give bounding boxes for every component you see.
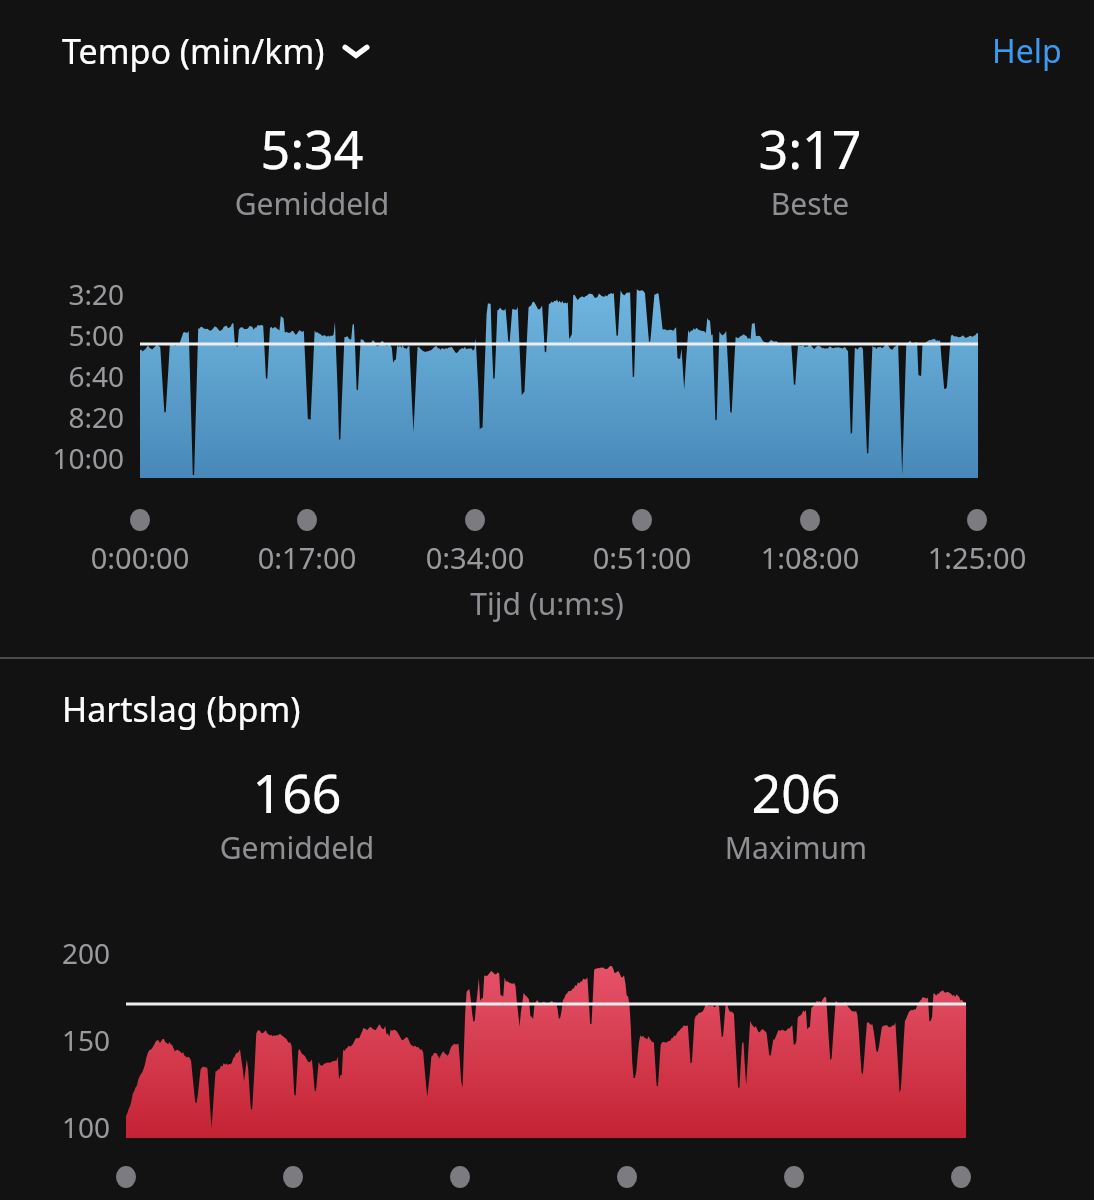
staticText: 6:40 xyxy=(20,357,124,395)
button[interactable]: Tempo (min/km) xyxy=(62,28,371,74)
staticText: 0:17:00 xyxy=(217,538,397,577)
staticText: Hartslag (bpm) xyxy=(62,686,301,732)
staticText: 0:00:00 xyxy=(50,538,230,577)
staticText: 8:20 xyxy=(20,398,124,436)
staticText: 1:25:00 xyxy=(887,538,1067,577)
staticText: Help xyxy=(992,29,1062,73)
staticText: 3:17 xyxy=(680,113,940,184)
staticText: 5:34 xyxy=(182,113,442,184)
staticText: 200 xyxy=(10,934,110,972)
staticText: 0:51:00 xyxy=(552,538,732,577)
staticText: Maximum xyxy=(646,827,946,868)
staticText: 5:00 xyxy=(20,316,124,354)
staticText: 10:00 xyxy=(20,439,124,477)
staticText: Gemiddeld xyxy=(147,827,447,868)
staticText: 0:34:00 xyxy=(385,538,565,577)
staticText: 206 xyxy=(666,757,926,828)
staticText: 3:20 xyxy=(20,275,124,313)
staticText: Beste xyxy=(660,183,960,224)
staticText: 100 xyxy=(10,1108,110,1146)
staticText: Gemiddeld xyxy=(162,183,462,224)
staticText: Tempo (min/km) xyxy=(62,28,325,74)
staticText: 150 xyxy=(10,1021,110,1059)
staticText: Tijd (u:m:s) xyxy=(0,583,1094,624)
staticText: 166 xyxy=(167,757,427,828)
button[interactable]: Help xyxy=(988,23,1066,79)
staticText: 1:08:00 xyxy=(720,538,900,577)
